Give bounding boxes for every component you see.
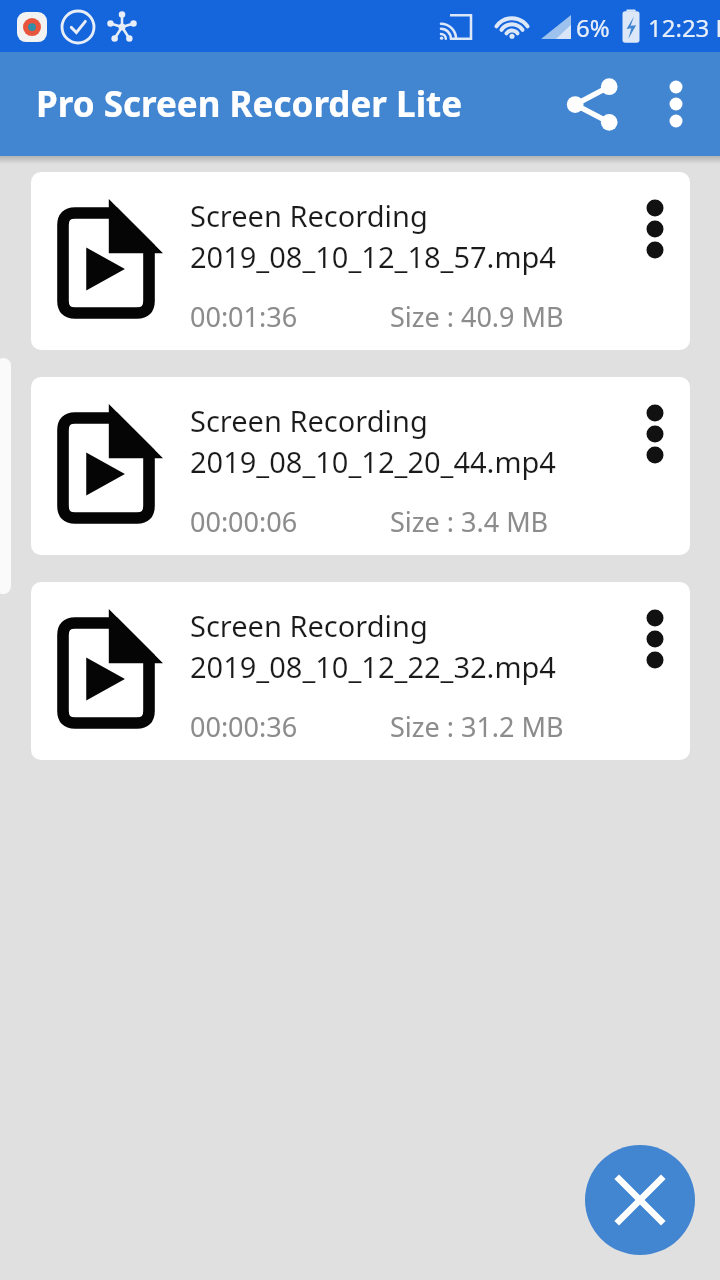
- button[interactable]: Share: [551, 62, 635, 146]
- button[interactable]: Screen Recording: [31, 172, 690, 350]
- button[interactable]: Stop recording: [585, 1145, 695, 1255]
- staticText: 00:01:36: [190, 298, 298, 335]
- staticText: Size : 31.2 MB: [390, 708, 564, 745]
- staticText: Screen Recording: [190, 606, 428, 645]
- button[interactable]: More options: [614, 377, 690, 453]
- staticText: 2019_08_10_12_20_44.mp4: [190, 442, 556, 481]
- staticText: 2019_08_10_12_18_57.mp4: [190, 237, 556, 276]
- staticText: Size : 3.4 MB: [390, 503, 549, 540]
- staticText: 00:00:06: [190, 503, 298, 540]
- button[interactable]: More options: [614, 582, 690, 658]
- staticText: 12:23 PM: [648, 11, 720, 44]
- button[interactable]: More options: [614, 172, 690, 248]
- staticText: Screen Recording: [190, 196, 428, 235]
- staticText: Pro Screen Recorder Lite: [36, 80, 463, 128]
- staticText: Screen Recording: [190, 401, 428, 440]
- staticText: Size : 40.9 MB: [390, 298, 564, 335]
- staticText: 6%: [576, 11, 610, 44]
- staticText: 2019_08_10_12_22_32.mp4: [190, 647, 556, 686]
- button[interactable]: More options: [638, 66, 714, 142]
- staticText: 00:00:36: [190, 708, 298, 745]
- button[interactable]: Screen Recording: [31, 582, 690, 760]
- button[interactable]: Screen Recording: [31, 377, 690, 555]
